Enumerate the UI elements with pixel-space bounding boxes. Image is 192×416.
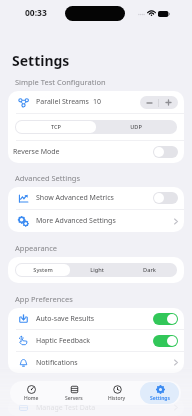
staticText: Data Management bbox=[15, 385, 81, 395]
staticText: App Preferences bbox=[15, 294, 73, 304]
staticText: Settings bbox=[150, 395, 170, 402]
button[interactable]: UDP bbox=[96, 121, 176, 133]
staticText: Appearance bbox=[15, 243, 58, 253]
button[interactable]: History bbox=[97, 382, 136, 404]
staticText: Parallel Streams bbox=[36, 97, 89, 107]
staticText: TCP bbox=[51, 123, 61, 131]
button[interactable]: Home bbox=[12, 382, 50, 404]
staticText: Light bbox=[90, 266, 104, 274]
button[interactable]: TCP bbox=[16, 121, 96, 133]
button[interactable]: System bbox=[16, 264, 70, 276]
staticText: Manage Test Data bbox=[36, 403, 96, 413]
staticText: Dark bbox=[143, 266, 156, 274]
button[interactable]: On bbox=[153, 335, 178, 347]
button[interactable]: Light bbox=[70, 264, 123, 276]
staticText: 00:33 bbox=[25, 7, 47, 19]
button[interactable]: Notifications bbox=[8, 352, 184, 373]
button[interactable]: Show Advanced Metrics bbox=[8, 187, 184, 209]
button[interactable]: Reverse Mode bbox=[8, 141, 184, 163]
staticText: Notifications bbox=[36, 358, 78, 368]
staticText: Servers bbox=[65, 395, 83, 402]
staticText: UDP bbox=[130, 123, 142, 131]
button[interactable]: Off bbox=[153, 192, 178, 204]
staticText: 10 bbox=[93, 97, 102, 107]
button[interactable]: Auto-save Results bbox=[8, 308, 184, 329]
staticText: Auto-save Results bbox=[36, 314, 95, 324]
button[interactable]: More Advanced Settings bbox=[8, 210, 184, 232]
button[interactable]: Off bbox=[153, 146, 178, 158]
staticText: System bbox=[33, 266, 53, 274]
staticText: Reverse Mode bbox=[13, 147, 60, 157]
staticText: History bbox=[108, 395, 126, 402]
button[interactable]: Decrease bbox=[140, 96, 158, 109]
staticText: Advanced Settings bbox=[15, 173, 80, 183]
button[interactable]: Manage Test Data bbox=[8, 399, 184, 416]
staticText: Home bbox=[24, 395, 39, 402]
staticText: Show Advanced Metrics bbox=[36, 193, 114, 203]
button[interactable]: Dark bbox=[123, 264, 176, 276]
button[interactable]: Haptic Feedback bbox=[8, 330, 184, 351]
button[interactable]: Parallel Streams bbox=[8, 91, 184, 113]
staticText: Haptic Feedback bbox=[36, 336, 91, 346]
button[interactable]: Servers bbox=[54, 382, 93, 404]
staticText: Simple Test Configuration bbox=[15, 77, 106, 87]
staticText: More Advanced Settings bbox=[36, 216, 116, 226]
button[interactable]: Increase bbox=[159, 96, 178, 109]
button[interactable]: Settings bbox=[140, 382, 179, 404]
button[interactable]: On bbox=[153, 313, 178, 325]
staticText: Settings bbox=[12, 51, 70, 70]
